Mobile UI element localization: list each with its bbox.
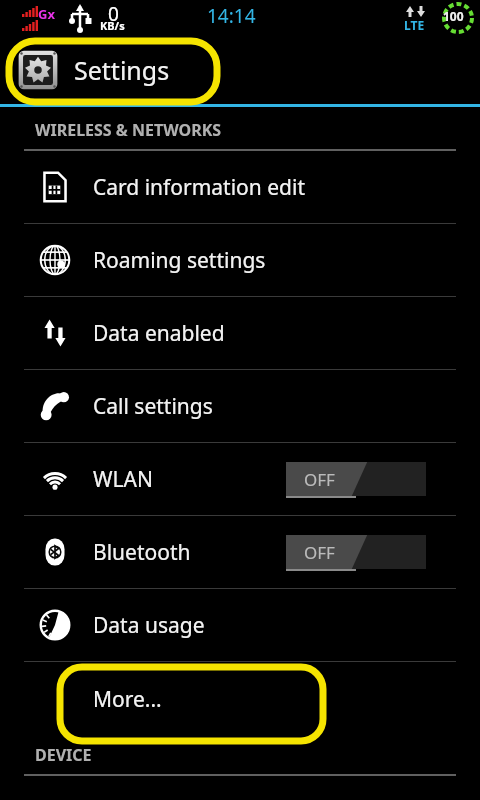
staticText: Data usage [93,611,205,640]
button[interactable]: Data enabled [0,297,480,369]
staticText: 14:14 [207,3,256,29]
button[interactable]: Bluetooth [0,516,480,588]
staticText: OFF [304,468,335,491]
staticText: WIRELESS & NETWORKS [35,119,222,141]
staticText: KB/s [100,18,125,33]
button[interactable]: Roaming settings [0,224,480,296]
staticText: Gx [38,5,55,23]
staticText: 100 [443,8,464,24]
staticText: LTE [404,17,425,33]
button[interactable]: Settings [0,36,480,104]
staticText: 0 [108,1,119,27]
staticText: Data enabled [93,319,225,348]
button[interactable]: Card information edit [0,151,480,223]
staticText: More... [93,685,162,714]
staticText: Call settings [93,392,213,421]
staticText: Settings [74,53,170,87]
button[interactable]: Toggle off [286,535,426,569]
button[interactable]: WLAN [0,443,480,515]
staticText: OFF [304,541,335,564]
staticText: Bluetooth [93,538,191,567]
button[interactable]: Data usage [0,589,480,661]
button[interactable]: More... [0,662,480,736]
staticText: Roaming settings [93,246,266,275]
button[interactable]: Call settings [0,370,480,442]
staticText: Card information edit [93,173,305,202]
staticText: WLAN [93,465,153,494]
staticText: DEVICE [35,744,92,766]
button[interactable]: Toggle off [286,462,426,496]
